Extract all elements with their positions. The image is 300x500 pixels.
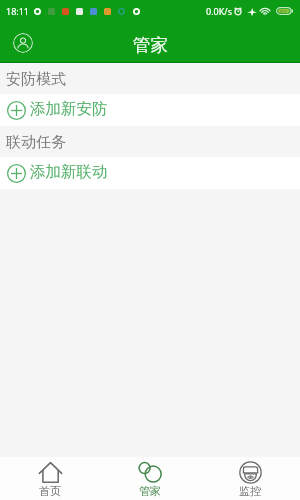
staticText: 添加新安防: [30, 99, 108, 119]
button[interactable]: 首页: [0, 457, 100, 500]
button[interactable]: 添加新联动: [0, 157, 300, 189]
staticText: 监控: [239, 484, 261, 498]
staticText: 0.0K/s: [206, 5, 232, 17]
staticText: 首页: [39, 484, 61, 498]
staticText: 18:11: [6, 5, 30, 17]
staticText: 管家: [133, 34, 168, 56]
button[interactable]: Account: [13, 33, 33, 53]
staticText: 管家: [139, 484, 161, 498]
staticText: 安防模式: [6, 70, 66, 89]
staticText: 添加新联动: [30, 162, 108, 182]
button[interactable]: 添加新安防: [0, 94, 300, 126]
button[interactable]: 管家: [100, 457, 200, 500]
staticText: 87: [280, 8, 287, 15]
button[interactable]: 监控: [200, 457, 300, 500]
staticText: 联动任务: [6, 133, 66, 152]
